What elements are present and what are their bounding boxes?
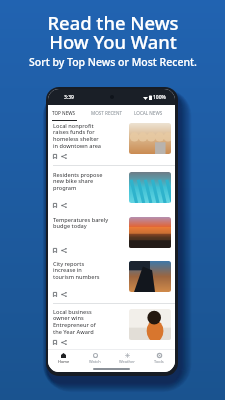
button[interactable]: Tools [143, 350, 175, 366]
button[interactable]: Share [61, 248, 67, 253]
staticText: TOP NEWS [52, 110, 76, 116]
staticText: 3:39 [64, 94, 74, 101]
button[interactable]: Watch [79, 350, 111, 366]
staticText: 100% [153, 94, 166, 101]
button[interactable]: Share [61, 340, 67, 345]
staticText: Tools [154, 359, 164, 364]
button[interactable]: Local nonprofit raises funds for homeles… [48, 121, 175, 166]
staticText: Local nonprofit raises funds for homeles… [53, 122, 102, 150]
staticText: LOCAL NEWS [134, 110, 163, 116]
staticText: Sort by Top News or Most Recent. [29, 55, 197, 69]
staticText: City reports increase in tourism numbers [53, 260, 100, 281]
button[interactable]: Local business owner wins Entrepreneur o… [48, 304, 175, 347]
button[interactable]: Bookmark [53, 154, 57, 159]
staticText: Local business owner wins Entrepreneur o… [53, 308, 96, 336]
staticText: Residents propose new bike share program [53, 171, 103, 192]
button[interactable]: Temperatures barely budge today [48, 210, 175, 254]
button[interactable]: Share [61, 292, 67, 297]
button[interactable]: MOST RECENT [85, 105, 127, 121]
button[interactable]: Bookmark [53, 203, 57, 208]
button[interactable]: Share [61, 154, 67, 159]
staticText: Watch [89, 359, 101, 364]
staticText: Weather [119, 359, 135, 364]
button[interactable]: Share [61, 203, 67, 208]
button[interactable]: Weather [111, 350, 143, 366]
button[interactable]: Bookmark [53, 248, 57, 253]
button[interactable]: Bookmark [53, 340, 57, 345]
staticText: Home [58, 359, 70, 364]
staticText: Read the News How You Want [47, 10, 179, 55]
button[interactable]: LOCAL NEWS [127, 105, 169, 121]
button[interactable]: TOP NEWS [48, 105, 85, 121]
button[interactable]: Home [48, 350, 79, 366]
staticText: Temperatures barely budge today [53, 216, 109, 230]
button[interactable]: Residents propose new bike share program [48, 166, 175, 210]
staticText: MOST RECENT [91, 110, 122, 116]
button[interactable]: City reports increase in tourism numbers [48, 254, 175, 304]
button[interactable]: Bookmark [53, 292, 57, 297]
